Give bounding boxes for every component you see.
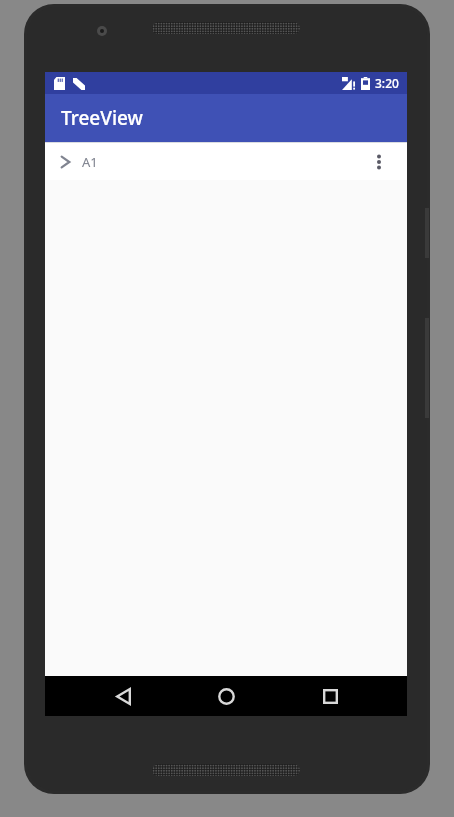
button[interactable]: Home [200, 676, 252, 716]
staticText: A1 [82, 153, 98, 171]
button[interactable]: Recent apps [304, 676, 356, 716]
button[interactable]: More options [363, 143, 395, 180]
button[interactable]: Back [97, 676, 149, 716]
button[interactable]: Expand A1 [45, 143, 407, 180]
button[interactable]: Expand A1 [55, 148, 75, 176]
staticText: TreeView [61, 105, 143, 131]
staticText: 3:20 [375, 75, 399, 91]
